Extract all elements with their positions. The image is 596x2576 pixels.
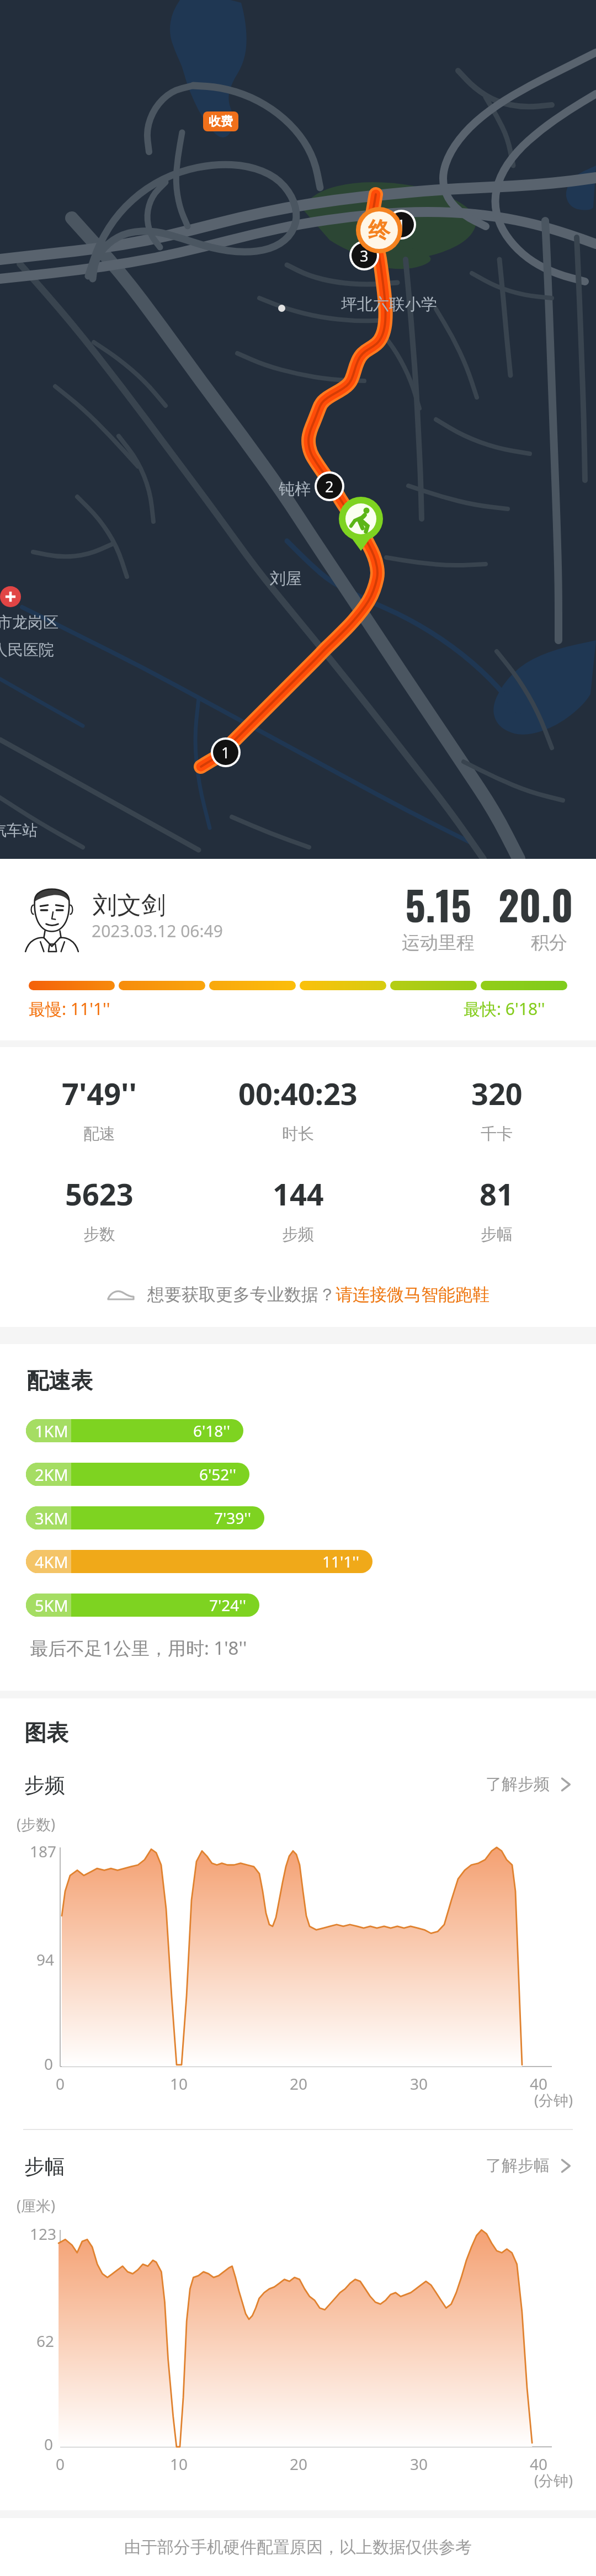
staticText: 2 bbox=[325, 476, 334, 497]
staticText: 4KM bbox=[35, 1551, 68, 1573]
staticText: 由于部分手机硬件配置原因，以上数据仅供参考 bbox=[124, 2537, 472, 2558]
button[interactable]: 5KM bbox=[26, 1594, 259, 1617]
staticText: 0 bbox=[44, 2053, 54, 2074]
staticText: 2KM bbox=[35, 1464, 68, 1485]
staticText: 3 bbox=[360, 246, 369, 266]
button[interactable]: 2KM bbox=[26, 1463, 249, 1486]
staticText: 7'39'' bbox=[214, 1507, 251, 1528]
staticText: 30 bbox=[410, 2453, 428, 2474]
button[interactable]: 4KM bbox=[26, 1550, 372, 1573]
staticText: 坪北六联小学 bbox=[341, 294, 437, 315]
staticText: 市龙岗区 bbox=[0, 613, 58, 632]
staticText: 2023.03.12 06:49 bbox=[92, 920, 223, 942]
staticText: 6'18'' bbox=[193, 1420, 230, 1441]
staticText: 人民医院 bbox=[0, 640, 54, 660]
staticText: 步幅 bbox=[481, 1224, 513, 1245]
staticText: (厘米) bbox=[17, 2195, 56, 2216]
staticText: 62 bbox=[36, 2330, 55, 2351]
button[interactable]: 了解步频 bbox=[486, 1774, 573, 1794]
staticText: 刘文剑 bbox=[93, 890, 166, 921]
staticText: 图表 bbox=[24, 1719, 68, 1746]
staticText: 94 bbox=[36, 1949, 55, 1970]
staticText: 积分 bbox=[531, 931, 567, 954]
button[interactable]: 3KM bbox=[26, 1506, 264, 1529]
staticText: 20.0 bbox=[498, 874, 573, 934]
staticText: 320 bbox=[471, 1073, 523, 1114]
button[interactable]: 想要获取更多专业数据？ bbox=[0, 1279, 596, 1310]
staticText: 刘屋 bbox=[270, 569, 302, 589]
staticText: 00:40:23 bbox=[238, 1073, 358, 1114]
staticText: 7'24'' bbox=[209, 1595, 246, 1616]
staticText: 40 bbox=[530, 2453, 548, 2474]
staticText: (分钟) bbox=[534, 2090, 573, 2110]
staticText: 了解步频 bbox=[486, 1774, 550, 1794]
staticText: (分钟) bbox=[534, 2470, 573, 2490]
staticText: 配速表 bbox=[26, 1367, 93, 1394]
staticText: 请连接微马智能跑鞋 bbox=[336, 1284, 489, 1305]
staticText: 5.15 bbox=[405, 874, 472, 934]
staticText: 0 bbox=[56, 2453, 65, 2474]
staticText: 5KM bbox=[35, 1595, 68, 1616]
staticText: 81 bbox=[480, 1173, 514, 1214]
staticText: 千卡 bbox=[481, 1124, 513, 1144]
button[interactable]: 1KM bbox=[26, 1419, 243, 1442]
staticText: 了解步幅 bbox=[486, 2155, 550, 2176]
staticText: 步数 bbox=[83, 1224, 115, 1245]
staticText: 终 bbox=[368, 216, 390, 244]
staticText: 收费 bbox=[209, 114, 233, 129]
staticText: 1 bbox=[221, 742, 230, 763]
staticText: 1 bbox=[397, 215, 406, 235]
staticText: 20 bbox=[290, 2453, 308, 2474]
staticText: 想要获取更多专业数据？ bbox=[147, 1284, 336, 1305]
staticText: 时长 bbox=[282, 1124, 314, 1144]
staticText: 10 bbox=[170, 2073, 188, 2094]
staticText: 汽车站 bbox=[0, 821, 38, 840]
staticText: 7'49'' bbox=[62, 1073, 137, 1114]
staticText: 20 bbox=[290, 2073, 308, 2094]
staticText: 40 bbox=[530, 2073, 548, 2094]
staticText: 10 bbox=[170, 2453, 188, 2474]
staticText: 钝梓 bbox=[279, 479, 311, 500]
staticText: 运动里程 bbox=[402, 931, 475, 954]
staticText: (步数) bbox=[17, 1814, 56, 1834]
staticText: 123 bbox=[30, 2223, 57, 2244]
staticText: 0 bbox=[44, 2434, 54, 2455]
staticText: 11'1'' bbox=[322, 1551, 359, 1572]
staticText: 6'52'' bbox=[199, 1464, 236, 1485]
staticText: 30 bbox=[410, 2073, 428, 2094]
staticText: 1KM bbox=[35, 1420, 68, 1442]
button[interactable]: 了解步幅 bbox=[486, 2155, 573, 2176]
staticText: 最慢: 11'1'' bbox=[29, 997, 110, 1020]
staticText: 3KM bbox=[35, 1507, 68, 1529]
staticText: 0 bbox=[56, 2073, 65, 2094]
staticText: 5623 bbox=[65, 1173, 134, 1214]
staticText: 配速 bbox=[83, 1124, 115, 1144]
staticText: 最快: 6'18'' bbox=[464, 997, 545, 1020]
staticText: 最后不足1公里，用时: 1'8'' bbox=[30, 1635, 247, 1660]
staticText: 步频 bbox=[282, 1224, 314, 1245]
staticText: 步幅 bbox=[24, 2154, 65, 2180]
staticText: 187 bbox=[30, 1841, 57, 1862]
staticText: 144 bbox=[273, 1173, 324, 1214]
staticText: 步频 bbox=[24, 1772, 65, 1798]
